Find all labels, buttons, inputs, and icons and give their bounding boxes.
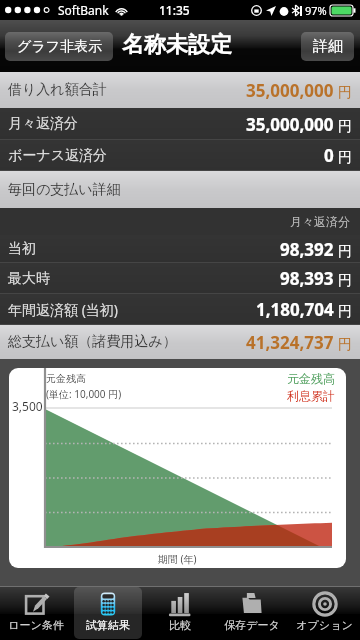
staticText: 41,324,737: [246, 331, 334, 354]
staticText: 元金残高: [287, 371, 335, 386]
staticText: SoftBank: [58, 2, 109, 18]
staticText: 利息累計: [287, 388, 335, 403]
staticText: 詳細: [313, 37, 343, 56]
staticText: 98,392: [280, 238, 334, 261]
button[interactable]: 借り入れ額合計: [0, 72, 360, 108]
button[interactable]: 総支払い額（諸費用込み）: [0, 325, 360, 359]
staticText: (単位: 10,000 円): [46, 387, 122, 401]
staticText: ローン条件: [8, 618, 64, 632]
staticText: 月々返済分: [290, 214, 350, 229]
staticText: 最大時: [8, 270, 50, 288]
staticText: 円: [338, 272, 352, 290]
button[interactable]: 比較: [146, 587, 214, 639]
staticText: 毎回の支払い詳細: [8, 181, 121, 199]
button[interactable]: 年間返済額 (当初): [0, 294, 360, 325]
staticText: 0: [324, 144, 334, 167]
staticText: グラフ非表示: [17, 38, 102, 56]
staticText: 98,393: [280, 267, 334, 290]
staticText: 円: [338, 303, 352, 321]
button[interactable]: 詳細: [301, 32, 354, 61]
button[interactable]: 月々返済分: [0, 108, 360, 140]
staticText: 3,500: [12, 398, 43, 414]
staticText: 35,000,000: [246, 113, 334, 136]
staticText: 円: [338, 243, 352, 261]
staticText: 円: [338, 336, 352, 354]
button[interactable]: オプション: [290, 587, 358, 639]
staticText: 円: [338, 84, 352, 102]
staticText: 比較: [169, 618, 191, 632]
button[interactable]: 当初: [0, 235, 360, 263]
staticText: ボーナス返済分: [8, 147, 107, 165]
staticText: 試算結果: [86, 618, 130, 632]
staticText: 総支払い額（諸費用込み）: [8, 333, 177, 351]
staticText: 1,180,704: [256, 298, 334, 321]
staticText: 年間返済額 (当初): [8, 300, 119, 319]
staticText: 円: [338, 118, 352, 136]
staticText: 期間 (年): [158, 552, 197, 566]
button[interactable]: 最大時: [0, 263, 360, 294]
button[interactable]: 試算結果: [74, 587, 142, 639]
staticText: オプション: [296, 618, 353, 632]
staticText: 97%: [305, 3, 327, 18]
staticText: 円: [338, 149, 352, 167]
button[interactable]: ローン条件: [2, 587, 70, 639]
button[interactable]: グラフ非表示: [5, 32, 113, 61]
staticText: 当初: [8, 240, 36, 258]
staticText: 借り入れ額合計: [8, 81, 107, 99]
staticText: 35,000,000: [246, 79, 334, 102]
staticText: 11:35: [159, 2, 190, 18]
staticText: 月々返済分: [8, 115, 78, 133]
button[interactable]: 保存データ: [218, 587, 286, 639]
staticText: 保存データ: [224, 618, 280, 632]
staticText: 元金残高: [46, 372, 86, 385]
button[interactable]: ボーナス返済分: [0, 140, 360, 171]
staticText: 名称未設定: [122, 31, 232, 59]
